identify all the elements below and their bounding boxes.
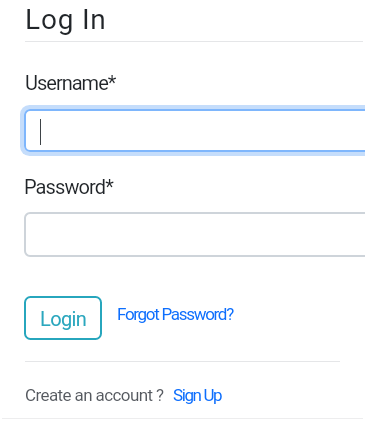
staticText: Login [40,307,87,330]
button[interactable] [24,109,365,152]
staticText: Log In [25,3,107,36]
button[interactable]: Forgot Password? [117,304,233,324]
staticText: Create an account ? [25,385,164,405]
button[interactable]: Sign Up [173,385,222,405]
button[interactable] [24,212,365,257]
staticText: Password* [24,175,113,198]
button[interactable]: Login [24,296,102,340]
staticText: Username* [25,71,116,94]
